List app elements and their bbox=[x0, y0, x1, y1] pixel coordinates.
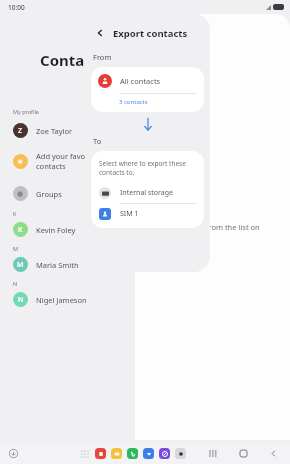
button[interactable]: Recent apps bbox=[207, 447, 220, 460]
staticText: Maria Smith bbox=[36, 260, 79, 270]
staticText: Add your favourite contacts bbox=[36, 151, 102, 171]
staticText: M bbox=[13, 245, 18, 252]
button[interactable]: App 5 bbox=[175, 448, 186, 459]
button[interactable]: Back bbox=[85, 26, 210, 40]
button[interactable]: App 1 bbox=[111, 448, 122, 459]
staticText: 3 contacts bbox=[119, 98, 148, 106]
button[interactable]: Z bbox=[0, 120, 135, 141]
staticText: N bbox=[13, 280, 18, 287]
staticText: To bbox=[93, 136, 102, 146]
staticText: M bbox=[17, 260, 24, 270]
staticText: ★ bbox=[17, 158, 24, 166]
staticText: My profile bbox=[13, 108, 39, 115]
staticText: Z bbox=[18, 126, 23, 136]
button[interactable]: ★ bbox=[0, 148, 135, 174]
staticText: Nigel Jameson bbox=[36, 295, 87, 305]
button[interactable]: ● bbox=[0, 183, 135, 204]
staticText: Export contacts bbox=[113, 27, 188, 40]
button[interactable]: M bbox=[0, 254, 135, 275]
staticText: K bbox=[18, 225, 23, 235]
button[interactable]: K bbox=[0, 219, 135, 240]
staticText: Contacts bbox=[40, 50, 107, 70]
staticText: ● bbox=[17, 190, 24, 198]
button[interactable]: N bbox=[0, 289, 135, 310]
button[interactable]: Apps bbox=[80, 449, 90, 459]
staticText: Zoe Taylor bbox=[36, 126, 73, 136]
button[interactable]: App 3 bbox=[143, 448, 154, 459]
button[interactable]: Home bbox=[237, 447, 250, 460]
staticText: 10:00 bbox=[8, 3, 25, 12]
staticText: Internal storage bbox=[120, 188, 173, 198]
button[interactable]: SIM 1 bbox=[91, 204, 204, 228]
staticText: Groups bbox=[36, 189, 62, 199]
button[interactable]: Downloads bbox=[7, 447, 19, 459]
staticText: All contacts bbox=[120, 76, 161, 86]
button[interactable]: Internal storage bbox=[91, 185, 204, 203]
staticText: Select a contact from the list on the le… bbox=[149, 222, 269, 243]
button[interactable]: All contacts bbox=[91, 67, 204, 112]
staticText: From bbox=[93, 52, 112, 62]
staticText: Select where to export these contacts to… bbox=[99, 159, 194, 177]
staticText: N bbox=[18, 295, 24, 305]
staticText: SIM 1 bbox=[120, 209, 139, 219]
button[interactable]: Back bbox=[267, 447, 280, 460]
other: Back bbox=[93, 26, 107, 40]
button[interactable]: App 0 bbox=[95, 448, 106, 459]
button[interactable]: App 2 bbox=[127, 448, 138, 459]
staticText: K bbox=[13, 210, 17, 217]
staticText: Kevin Foley bbox=[36, 225, 76, 235]
button[interactable]: App 4 bbox=[159, 448, 170, 459]
